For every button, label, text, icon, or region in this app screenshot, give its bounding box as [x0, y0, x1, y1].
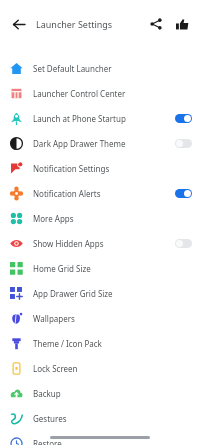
staticText: Launcher Control Center [33, 88, 192, 99]
button[interactable]: More Apps [0, 206, 200, 231]
button[interactable]: Notification Alerts toggle [175, 189, 192, 198]
button[interactable]: Notification Settings [0, 156, 200, 181]
staticText: App Drawer Grid Size [33, 288, 192, 299]
button[interactable]: Show Hidden Apps [0, 231, 200, 256]
staticText: Launcher Settings [36, 18, 113, 30]
staticText: Restore [33, 438, 192, 445]
button[interactable]: Share [144, 12, 168, 36]
staticText: Notification Settings [33, 163, 192, 174]
button[interactable]: Notification Alerts [0, 181, 200, 206]
staticText: More Apps [33, 213, 192, 224]
button[interactable]: Gestures [0, 406, 200, 431]
button[interactable]: Restore [0, 431, 200, 445]
staticText: Wallpapers [33, 313, 192, 324]
staticText: Notification Alerts [33, 188, 175, 199]
button[interactable]: Launch at Phone Startup toggle [175, 114, 192, 123]
button[interactable]: Rate [170, 12, 194, 36]
button[interactable]: Back [6, 12, 30, 36]
button[interactable]: Show Hidden Apps toggle [175, 239, 192, 248]
staticText: Show Hidden Apps [33, 238, 175, 249]
button[interactable]: Set Default Launcher [0, 56, 200, 81]
button[interactable]: Dark App Drawer Theme [0, 131, 200, 156]
button[interactable]: Home Grid Size [0, 256, 200, 281]
staticText: Backup [33, 388, 192, 399]
staticText: Gestures [33, 413, 192, 424]
button[interactable]: Wallpapers [0, 306, 200, 331]
button[interactable]: App Drawer Grid Size [0, 281, 200, 306]
button[interactable]: Backup [0, 381, 200, 406]
staticText: Home Grid Size [33, 263, 192, 274]
button[interactable]: Launcher Control Center [0, 81, 200, 106]
button[interactable]: Launch at Phone Startup [0, 106, 200, 131]
button[interactable]: Lock Screen [0, 356, 200, 381]
button[interactable]: Theme / Icon Pack [0, 331, 200, 356]
staticText: Set Default Launcher [33, 63, 192, 74]
staticText: Launch at Phone Startup [33, 113, 175, 124]
staticText: Lock Screen [33, 363, 192, 374]
staticText: Dark App Drawer Theme [33, 138, 175, 149]
button[interactable]: Dark App Drawer Theme toggle [175, 139, 192, 148]
staticText: Theme / Icon Pack [33, 338, 192, 349]
